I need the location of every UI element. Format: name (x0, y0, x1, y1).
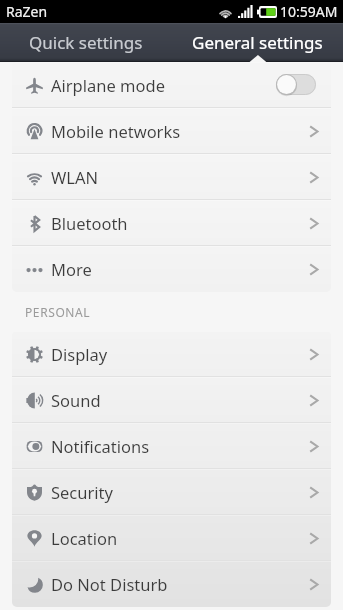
button[interactable]: Do Not Disturb (12, 561, 331, 607)
button[interactable]: General settings (171, 23, 343, 62)
button[interactable]: Airplane mode toggle (276, 74, 318, 96)
button[interactable]: Notifications (12, 423, 331, 469)
button[interactable]: Bluetooth (12, 200, 331, 246)
staticText: Mobile networks (51, 120, 181, 142)
staticText: Do Not Disturb (51, 573, 168, 595)
staticText: RaZen (6, 2, 48, 21)
button[interactable]: WLAN (12, 154, 331, 200)
button[interactable]: More (12, 246, 331, 292)
staticText: PERSONAL (25, 304, 91, 320)
button[interactable]: Quick settings (0, 23, 171, 62)
staticText: WLAN (51, 166, 99, 188)
button[interactable]: Location (12, 515, 331, 561)
button[interactable]: Security (12, 469, 331, 515)
staticText: Security (51, 481, 113, 503)
button[interactable]: Display (12, 331, 331, 377)
staticText: More (51, 258, 92, 280)
staticText: Bluetooth (51, 212, 128, 234)
staticText: Sound (51, 389, 101, 411)
staticText: 10:59AM (280, 2, 338, 21)
staticText: Airplane mode (51, 74, 165, 96)
staticText: Location (51, 527, 118, 549)
staticText: Quick settings (29, 31, 143, 54)
button[interactable]: Mobile networks (12, 108, 331, 154)
staticText: Display (51, 343, 108, 365)
staticText: Notifications (51, 435, 150, 457)
staticText: General settings (192, 31, 323, 54)
button[interactable]: Airplane mode (12, 62, 331, 108)
button[interactable]: Sound (12, 377, 331, 423)
